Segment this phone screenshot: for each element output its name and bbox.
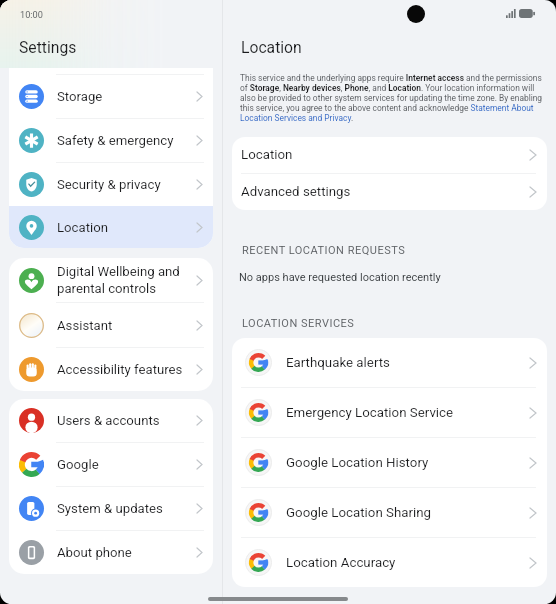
staticText: Assistant <box>57 318 197 333</box>
button[interactable]: Emergency Location Service <box>232 388 547 437</box>
staticText: Accessibility features <box>57 362 197 377</box>
staticText: Storage <box>57 89 197 104</box>
staticText: Digital Wellbeing and parental controls <box>57 264 197 296</box>
button[interactable]: Location Accuracy <box>232 538 547 587</box>
staticText: Location <box>241 147 530 163</box>
button[interactable]: Assistant <box>9 303 213 347</box>
staticText: Earthquake alerts <box>286 355 530 371</box>
staticText: Google Location History <box>286 455 530 471</box>
button[interactable]: Accessibility features <box>9 348 213 391</box>
staticText: System & updates <box>57 501 197 516</box>
button[interactable]: Digital Wellbeing and parental controls <box>9 258 213 302</box>
button[interactable]: About phone <box>9 531 213 574</box>
button[interactable]: Advanced settings <box>232 174 547 210</box>
button[interactable]: Users & accounts <box>9 399 213 442</box>
button[interactable]: Security & privacy <box>9 163 213 206</box>
staticText: Security & privacy <box>57 177 197 192</box>
button[interactable]: Storage <box>9 75 213 118</box>
staticText: Location Accuracy <box>286 555 530 571</box>
staticText: Location <box>57 220 197 235</box>
staticText: Advanced settings <box>241 184 530 200</box>
button[interactable]: Location <box>9 206 213 248</box>
button[interactable]: Safety & emergency <box>9 119 213 162</box>
button[interactable]: Google Location Sharing <box>232 488 547 537</box>
staticText: LOCATION SERVICES <box>242 317 355 330</box>
button[interactable]: Google <box>9 443 213 486</box>
staticText: RECENT LOCATION REQUESTS <box>242 244 406 257</box>
staticText: No apps have requested location recently <box>239 271 441 284</box>
staticText: Emergency Location Service <box>286 405 530 421</box>
staticText: Location <box>241 38 302 56</box>
button[interactable]: System & updates <box>9 487 213 530</box>
staticText: 10:00 <box>20 9 43 20</box>
staticText: About phone <box>57 545 197 560</box>
staticText: This service and the underlying apps req… <box>240 73 543 123</box>
staticText: Google <box>57 457 197 472</box>
other: Home <box>208 597 348 601</box>
staticText: Settings <box>19 38 77 56</box>
staticText: Google Location Sharing <box>286 505 530 521</box>
button[interactable]: Earthquake alerts <box>232 338 547 387</box>
staticText: Users & accounts <box>57 413 197 428</box>
staticText: Safety & emergency <box>57 133 197 148</box>
button[interactable]: Google Location History <box>232 438 547 487</box>
button[interactable]: Location <box>232 137 547 173</box>
